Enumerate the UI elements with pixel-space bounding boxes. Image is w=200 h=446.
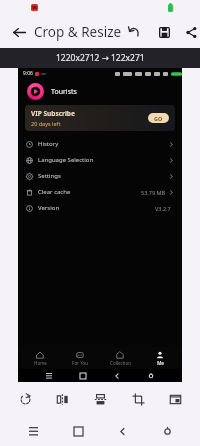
- button[interactable]: Recents: [22, 420, 44, 442]
- staticText: 20 days left: [31, 120, 61, 127]
- staticText: V3.2.7: [155, 205, 171, 212]
- staticText: Home: [34, 360, 47, 366]
- button[interactable]: Settings: [26, 168, 174, 184]
- staticText: For You: [72, 360, 88, 366]
- button[interactable]: Save: [152, 20, 176, 44]
- button[interactable]: Share: [182, 20, 200, 44]
- staticText: Collection: [110, 360, 131, 366]
- button[interactable]: Rotate: [12, 386, 38, 412]
- button[interactable]: For You: [62, 351, 98, 366]
- button[interactable]: Back: [8, 21, 30, 43]
- staticText: History: [38, 140, 59, 148]
- staticText: GO: [154, 115, 163, 122]
- button[interactable]: Crop: [125, 386, 151, 412]
- button[interactable]: Back: [111, 420, 133, 442]
- staticText: 53.79 MB: [141, 189, 166, 196]
- button[interactable]: Home: [67, 420, 89, 442]
- button[interactable]: Resize: [162, 386, 188, 412]
- button[interactable]: Flip vertical: [87, 386, 113, 412]
- staticText: Settings: [38, 172, 61, 180]
- staticText: 1220x2712 → 122x271: [56, 52, 145, 64]
- staticText: Crop & Resize: [34, 23, 122, 41]
- button[interactable]: VIP Subscribe: [25, 105, 175, 131]
- button[interactable]: Undo: [122, 20, 146, 44]
- button[interactable]: Assistant: [156, 420, 178, 442]
- button[interactable]: Me: [142, 351, 178, 366]
- staticText: 9:06: [23, 70, 33, 77]
- staticText: Clear cache: [38, 188, 71, 196]
- button[interactable]: Flip horizontal: [49, 386, 75, 412]
- button[interactable]: Collection: [102, 351, 138, 366]
- button[interactable]: Clear cache: [26, 184, 174, 200]
- button[interactable]: Language Selection: [26, 152, 174, 168]
- staticText: Version: [38, 204, 60, 212]
- staticText: Me: [157, 360, 164, 366]
- staticText: VIP Subscribe: [31, 109, 75, 118]
- staticText: Tourists: [51, 87, 77, 97]
- button[interactable]: History: [26, 136, 174, 152]
- button[interactable]: Version: [26, 200, 174, 216]
- button[interactable]: GO: [148, 113, 169, 123]
- staticText: Language Selection: [38, 156, 94, 164]
- button[interactable]: Home: [22, 351, 58, 366]
